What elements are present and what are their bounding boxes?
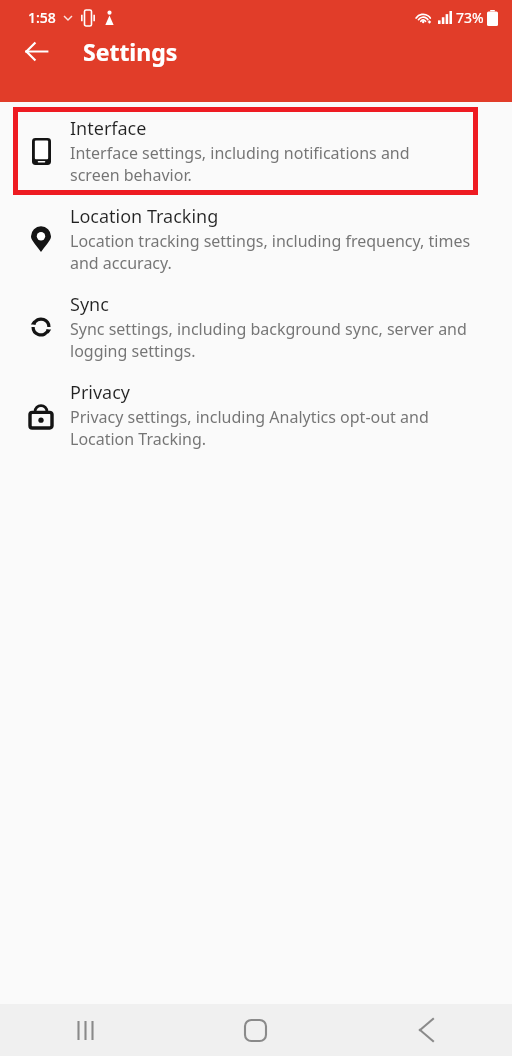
button[interactable]: Interface — [13, 107, 478, 195]
button[interactable]: Back — [341, 1004, 512, 1056]
staticText: 73% — [456, 8, 484, 27]
button[interactable]: Sync — [0, 283, 512, 371]
staticText: 1:58 — [28, 8, 56, 27]
staticText: Sync — [70, 292, 109, 317]
staticText: Interface settings, including notificati… — [70, 142, 450, 186]
staticText: Location tracking settings, including fr… — [70, 230, 472, 274]
staticText: Settings — [83, 36, 178, 67]
button[interactable]: Home — [170, 1004, 341, 1056]
staticText: Sync settings, including background sync… — [70, 318, 484, 362]
staticText: Location Tracking — [70, 204, 219, 229]
button[interactable]: Back — [12, 34, 60, 68]
button[interactable]: Location Tracking — [0, 195, 512, 283]
button[interactable]: Privacy — [0, 371, 512, 459]
staticText: Privacy settings, including Analytics op… — [70, 406, 478, 450]
staticText: Privacy — [70, 380, 131, 405]
button[interactable]: Recents — [0, 1004, 170, 1056]
staticText: Interface — [70, 116, 147, 141]
